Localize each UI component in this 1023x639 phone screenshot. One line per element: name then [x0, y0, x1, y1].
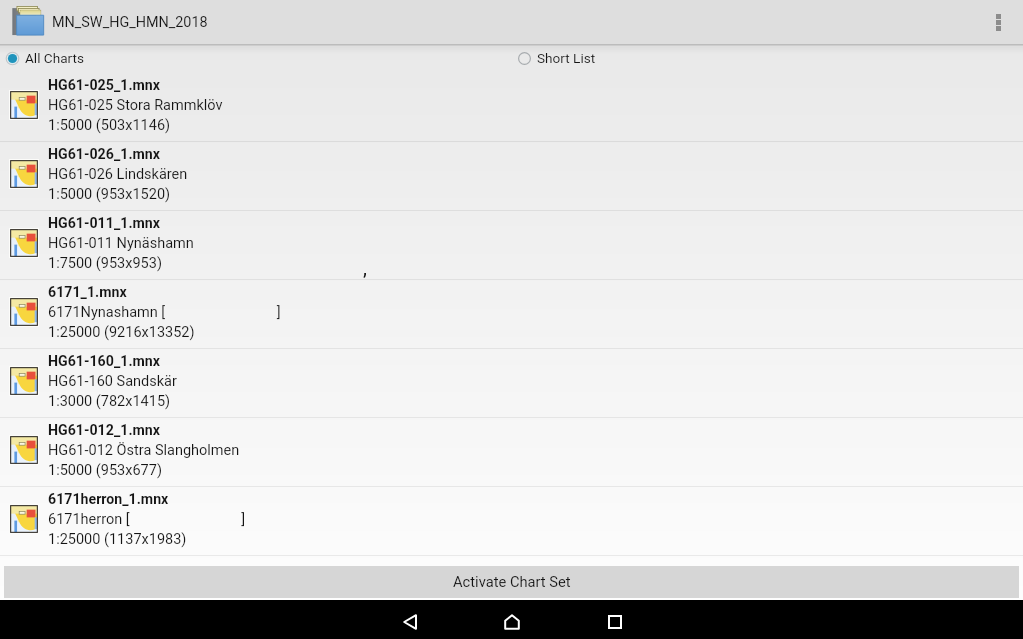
button[interactable]: HG61-012_1.mnx [0, 418, 1023, 486]
staticText: All Charts [25, 50, 84, 66]
staticText: MN_SW_HG_HMN_2018 [52, 14, 208, 31]
staticText: 1:7500 (953x953) [48, 255, 162, 272]
staticText: 1:25000 (9216x13352) [48, 324, 195, 341]
staticText: HG61-011 Nynäshamn [48, 235, 194, 252]
staticText: 6171herron_1.mnx [48, 491, 169, 508]
staticText: 6171Nynashamn [ ] [48, 304, 281, 321]
staticText: , [363, 260, 367, 279]
button[interactable]: Back [386, 602, 434, 639]
button[interactable]: 6171_1.mnx [0, 280, 1023, 348]
staticText: 1:5000 (503x1146) [48, 117, 171, 134]
button[interactable]: HG61-011_1.mnx [0, 211, 1023, 279]
staticText: 1:5000 (953x677) [48, 462, 162, 479]
staticText: HG61-026_1.mnx [48, 146, 160, 163]
button[interactable]: 6171herron_1.mnx [0, 487, 1023, 555]
staticText: HG61-012_1.mnx [48, 422, 160, 439]
staticText: 1:5000 (953x1520) [48, 186, 171, 203]
button[interactable]: HG61-025_1.mnx [0, 73, 1023, 141]
staticText: HG61-160 Sandskär [48, 373, 177, 390]
button[interactable]: All Charts [0, 45, 120, 71]
button[interactable]: Recent apps [591, 602, 639, 639]
staticText: HG61-025 Stora Rammklöv [48, 97, 223, 114]
staticText: Activate Chart Set [453, 573, 571, 590]
staticText: 6171_1.mnx [48, 284, 127, 301]
staticText: 1:25000 (1137x1983) [48, 531, 187, 548]
staticText: 1:3000 (782x1415) [48, 393, 171, 410]
button[interactable]: HG61-160_1.mnx [0, 349, 1023, 417]
staticText: HG61-011_1.mnx [48, 215, 160, 232]
button[interactable]: More options [977, 0, 1023, 44]
staticText: HG61-025_1.mnx [48, 77, 160, 94]
button[interactable]: Short List [512, 45, 632, 71]
button[interactable]: Activate Chart Set [4, 566, 1019, 598]
staticText: HG61-026 Lindskären [48, 166, 188, 183]
staticText: HG61-160_1.mnx [48, 353, 160, 370]
button[interactable]: Home [488, 602, 536, 639]
staticText: 6171herron [ ] [48, 511, 246, 528]
staticText: HG61-012 Östra Slangholmen [48, 442, 240, 459]
button[interactable]: HG61-026_1.mnx [0, 142, 1023, 210]
staticText: Short List [537, 50, 596, 66]
